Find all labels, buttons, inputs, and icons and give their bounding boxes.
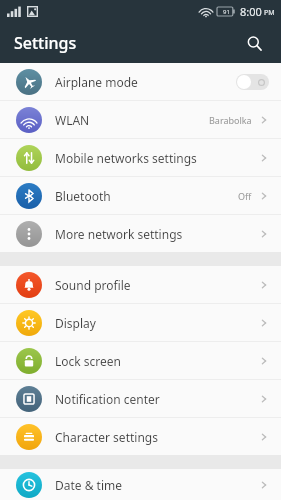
staticText: Date & time: [55, 477, 259, 493]
button[interactable]: Date & time: [0, 469, 281, 500]
button[interactable]: Search: [237, 26, 271, 60]
staticText: WLAN: [55, 112, 209, 128]
staticText: Bluetooth: [55, 188, 238, 204]
staticText: More network settings: [55, 226, 259, 242]
staticText: Settings: [14, 32, 77, 54]
staticText: Mobile networks settings: [55, 150, 259, 166]
staticText: 8:00: [240, 4, 262, 19]
button[interactable]: Mobile networks settings: [0, 138, 281, 176]
button[interactable]: Airplane mode toggle: [236, 74, 269, 90]
button[interactable]: Bluetooth: [0, 176, 281, 214]
staticText: Off: [238, 190, 252, 202]
button[interactable]: Notification center: [0, 379, 281, 417]
button[interactable]: Sound profile: [0, 266, 281, 303]
button[interactable]: Lock screen: [0, 341, 281, 379]
staticText: Notification center: [55, 391, 259, 407]
button[interactable]: Display: [0, 303, 281, 341]
staticText: Lock screen: [55, 353, 259, 369]
staticText: Airplane mode: [55, 74, 236, 90]
button[interactable]: WLAN: [0, 100, 281, 138]
staticText: Character settings: [55, 429, 259, 445]
button[interactable]: More network settings: [0, 214, 281, 252]
staticText: Barabolka: [209, 114, 252, 126]
staticText: PM: [264, 8, 275, 18]
button[interactable]: Airplane mode: [0, 63, 281, 100]
button[interactable]: Character settings: [0, 417, 281, 455]
staticText: Sound profile: [55, 277, 259, 293]
staticText: 91: [223, 8, 230, 16]
staticText: Display: [55, 315, 259, 331]
